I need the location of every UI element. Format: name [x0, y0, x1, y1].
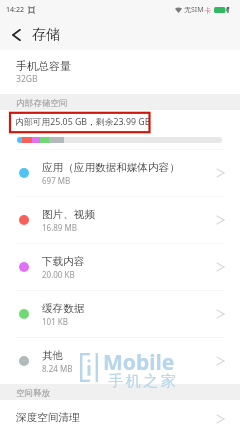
staticText: 卡 [204, 6, 211, 15]
staticText: 32GB [16, 73, 38, 85]
button[interactable]: 应用（应用数据和媒体内容） [0, 150, 240, 196]
staticText: 手机总容量 [16, 59, 71, 73]
staticText: 深度空间清理 [16, 411, 80, 424]
button[interactable]: 其他 [0, 338, 240, 384]
staticText: 14:22 [6, 5, 24, 15]
staticText: 下载内容 [42, 255, 85, 268]
staticText: 697 MB [42, 175, 71, 186]
staticText: 16.89 MB [42, 222, 77, 233]
staticText: 图片、视频 [42, 208, 95, 221]
staticText: 内部存储空间 [16, 98, 68, 109]
staticText: 存储 [32, 26, 60, 44]
staticText: 无SIM [184, 5, 204, 15]
button[interactable]: Back [0, 20, 32, 50]
staticText: 20.00 KB [42, 269, 75, 280]
staticText: 应用（应用数据和媒体内容） [42, 161, 180, 174]
staticText: 缓存数据 [42, 302, 85, 315]
staticText: 空间释放 [16, 388, 51, 399]
staticText: 内部可用25.05 GB，剩余23.99 GB [15, 116, 151, 128]
staticText: 8.24 MB [42, 363, 73, 374]
staticText: 手机之家 [107, 372, 177, 391]
staticText: 其他 [42, 349, 64, 362]
button[interactable]: 下载内容 [0, 244, 240, 290]
staticText: Mobile [103, 348, 175, 377]
staticText: 101 KB [42, 316, 68, 327]
button[interactable]: 图片、视频 [0, 197, 240, 243]
button[interactable]: 缓存数据 [0, 291, 240, 337]
button[interactable]: 深度空间清理 [0, 400, 240, 427]
